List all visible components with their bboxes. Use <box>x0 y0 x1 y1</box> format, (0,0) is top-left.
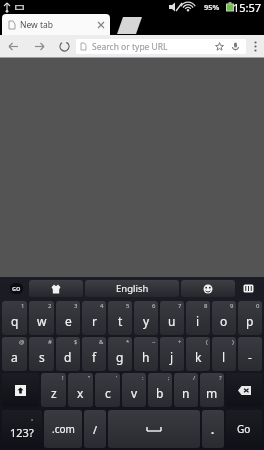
button[interactable]: ~ <box>134 337 158 371</box>
button[interactable]: " <box>68 373 93 407</box>
staticText: ? <box>219 374 222 382</box>
button[interactable]: 6 <box>134 301 158 335</box>
button[interactable]: Space <box>108 410 200 448</box>
staticText: 1 <box>21 302 25 310</box>
staticText: $ <box>74 338 78 346</box>
button[interactable]: : <box>122 373 146 407</box>
button[interactable]: Keyboard settings <box>235 277 261 300</box>
button[interactable]: New tab <box>2 14 110 35</box>
staticText: 15:57 <box>233 0 262 14</box>
button[interactable]: ' <box>95 373 120 407</box>
button[interactable]: Themes <box>29 280 83 297</box>
button[interactable]: 0 <box>238 301 262 335</box>
staticText: r <box>92 313 97 329</box>
staticText: a <box>11 349 18 365</box>
button[interactable]: ? <box>200 373 224 407</box>
button[interactable]: Forward <box>26 35 52 57</box>
button[interactable]: 2 <box>29 301 54 335</box>
staticText: - <box>248 349 252 365</box>
staticText: Go <box>237 422 251 436</box>
staticText: h <box>142 349 150 365</box>
staticText: English <box>116 282 149 295</box>
button[interactable]: Period <box>202 410 224 448</box>
button[interactable]: .com <box>44 410 82 448</box>
button[interactable]: $ <box>56 337 80 371</box>
staticText: ( <box>206 338 208 346</box>
staticText: z <box>51 385 57 401</box>
button[interactable]: * <box>108 337 132 371</box>
button[interactable]: Bookmark <box>213 40 226 53</box>
staticText: k <box>195 349 202 365</box>
staticText: 8 <box>204 302 208 310</box>
button[interactable]: / <box>174 373 198 407</box>
staticText: e <box>65 313 72 329</box>
staticText: / <box>93 422 98 437</box>
staticText: New tab <box>20 19 54 31</box>
button[interactable]: Back <box>0 35 26 57</box>
staticText: m <box>206 385 218 401</box>
button[interactable]: ( <box>186 337 210 371</box>
staticText: 95% <box>204 2 220 12</box>
staticText: .com <box>52 422 75 436</box>
button[interactable]: Reload <box>52 35 76 57</box>
button[interactable]: 9 <box>212 301 236 335</box>
staticText: u <box>168 313 176 329</box>
staticText: 4 <box>100 302 104 310</box>
button[interactable]: 1 <box>2 301 27 335</box>
staticText: : <box>142 374 144 382</box>
button[interactable]: Search or type URL <box>76 39 246 54</box>
staticText: * <box>126 338 130 346</box>
staticText: o <box>220 313 228 329</box>
staticText: s <box>39 349 45 365</box>
button[interactable]: & <box>82 337 106 371</box>
button[interactable]: Shift <box>2 373 39 407</box>
staticText: 123? <box>10 425 34 440</box>
button[interactable]: + <box>160 337 184 371</box>
button[interactable]: GO keyboard <box>3 277 29 300</box>
button[interactable]: - <box>238 337 262 371</box>
staticText: # <box>48 338 52 346</box>
staticText: d <box>64 349 72 365</box>
staticText: c <box>105 385 111 401</box>
staticText: 9 <box>230 302 234 310</box>
button[interactable]: Backspace <box>226 373 262 407</box>
staticText: ° <box>31 418 34 425</box>
button[interactable]: 8 <box>186 301 210 335</box>
staticText: p <box>246 313 254 329</box>
button[interactable]: 3 <box>56 301 80 335</box>
staticText: v <box>131 385 138 401</box>
staticText: n <box>182 385 190 401</box>
button[interactable]: Close tab <box>95 19 106 30</box>
button[interactable]: Slash <box>84 410 106 448</box>
button[interactable]: ! <box>41 373 66 407</box>
staticText: j <box>170 349 174 365</box>
staticText: ! <box>62 374 64 382</box>
button[interactable]: Go <box>226 410 262 448</box>
button[interactable]: New tab <box>112 14 142 35</box>
button[interactable]: @ <box>2 337 27 371</box>
button[interactable]: Emoji <box>181 280 235 297</box>
button[interactable]: # <box>29 337 54 371</box>
staticText: i <box>196 313 200 329</box>
button[interactable]: English <box>85 280 179 297</box>
staticText: / <box>193 374 196 382</box>
staticText: 5 <box>126 302 130 310</box>
staticText: @ <box>19 338 25 346</box>
staticText: 7 <box>178 302 182 310</box>
staticText: x <box>77 385 84 401</box>
button[interactable]: Voice search <box>229 40 242 53</box>
staticText: " <box>88 374 91 382</box>
staticText: w <box>37 313 47 329</box>
button[interactable]: ) <box>212 337 236 371</box>
staticText: + <box>178 338 182 346</box>
button[interactable]: ; <box>148 373 172 407</box>
staticText: & <box>99 338 104 346</box>
staticText: 3 <box>74 302 78 310</box>
staticText: Search or type URL <box>92 41 168 53</box>
button[interactable]: More options <box>246 35 264 57</box>
button[interactable]: 4 <box>82 301 106 335</box>
staticText: y <box>143 313 150 329</box>
button[interactable]: 7 <box>160 301 184 335</box>
button[interactable]: Symbols <box>2 410 42 448</box>
button[interactable]: 5 <box>108 301 132 335</box>
